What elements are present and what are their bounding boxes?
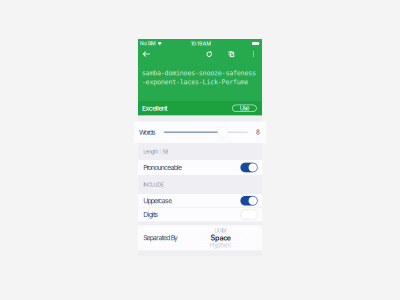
staticText: 8: [256, 128, 260, 136]
button[interactable]: Digits: [138, 208, 262, 221]
staticText: Hyphen: [210, 242, 231, 249]
staticText: No SIM: [140, 40, 156, 46]
staticText: Digits: [143, 211, 158, 219]
button[interactable]: Use: [232, 105, 256, 112]
button[interactable]: Dollar: [198, 227, 244, 249]
staticText: Excellent: [142, 104, 167, 112]
button[interactable]: Pronounceable: [138, 160, 262, 175]
staticText: Length : 58: [143, 148, 168, 155]
staticText: Words: [139, 128, 156, 136]
staticText: Dollar: [214, 227, 227, 234]
button[interactable]: Uppercase: [138, 194, 262, 207]
staticText: -exponent-laces-Lick-Perfume: [142, 78, 248, 86]
button[interactable]: Regenerate: [203, 48, 215, 60]
staticText: Pronounceable: [143, 163, 182, 172]
staticText: Uppercase: [143, 197, 172, 205]
staticText: Separated By: [143, 234, 178, 242]
staticText: Space: [210, 233, 231, 242]
button[interactable]: More options: [247, 48, 259, 60]
staticText: Use: [240, 105, 249, 112]
staticText: INCLUDE: [143, 181, 164, 188]
button[interactable]: Back: [138, 48, 155, 60]
button[interactable]: Copy: [225, 48, 237, 60]
staticText: samba-dominoes-snooze-safeness: [142, 69, 256, 77]
staticText: 10:19 AM: [191, 40, 211, 47]
